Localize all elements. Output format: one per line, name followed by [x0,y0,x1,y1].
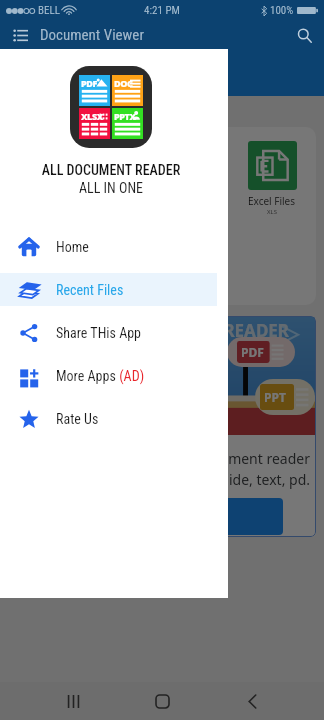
staticText: Rate Us [56,411,99,427]
staticText: ALL IN ONE [0,180,222,196]
button[interactable]: Excel Files [239,141,305,216]
staticText: (AD) [116,368,145,384]
button[interactable]: Home [0,230,217,263]
button[interactable]: Rate Us [0,402,217,435]
staticText: XLSX [81,110,103,122]
button[interactable]: Recents [56,684,90,718]
staticText: Recently viewd [16,63,121,83]
button[interactable]: Excel Files [131,141,197,216]
staticText: PPT [264,389,286,405]
staticText: Share THis App [56,325,142,341]
staticText: PDF [81,77,97,89]
button[interactable]: More Apps [0,359,217,392]
button[interactable]: Excel Files [23,141,89,216]
staticText: BELL [38,4,60,17]
button[interactable]: ALL DOCUMENT READER [8,316,316,537]
staticText: PPTX [114,110,136,122]
staticText: Document Viewer [40,26,144,44]
button[interactable]: Home [145,684,179,718]
staticText: 4:21 PM [144,4,180,17]
staticText: ALL DOCUMENT READER [9,319,289,342]
staticText: Recent Files [56,282,124,298]
button[interactable]: Back [235,684,269,718]
button[interactable]: Open navigation drawer [8,23,32,47]
staticText: Excel Files [248,194,296,208]
staticText: DOC [114,77,133,89]
button[interactable] [16,498,283,535]
staticText: ALL DOCUMENT READER [0,162,222,178]
button[interactable]: Recent Files [0,273,217,306]
staticText: word, excel, slide, text, pd. [8,470,310,489]
staticText: 100% [270,4,294,17]
staticText: PDF [241,344,264,360]
button[interactable]: Search [292,23,316,47]
staticText: XLS [267,208,277,216]
staticText: More Apps [56,368,116,384]
staticText: Home [56,239,89,255]
button[interactable]: Share THis App [0,316,217,349]
staticText: All in one document reader [8,449,310,468]
